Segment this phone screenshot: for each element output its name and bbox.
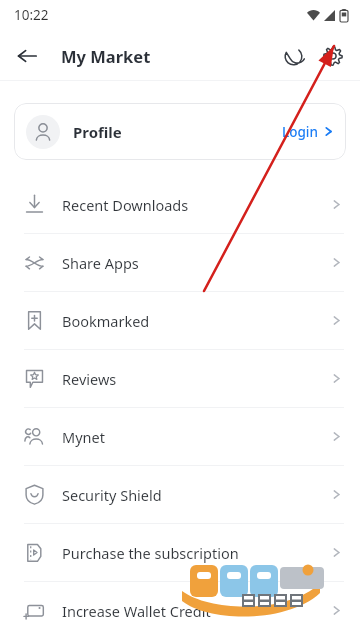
staticText: Bookmarked [62,311,150,331]
staticText: Security Shield [62,485,162,505]
button[interactable]: Bookmarked [0,292,360,349]
button[interactable]: Mynet [0,408,360,465]
staticText: Reviews [62,369,117,389]
staticText: Login [282,123,318,141]
button[interactable]: Reviews [0,350,360,407]
staticText: Recent Downloads [62,195,189,215]
staticText: Mynet [62,427,105,447]
button[interactable]: Profile [14,103,346,160]
button[interactable]: Settings [313,36,353,76]
button[interactable]: Share Apps [0,234,360,291]
staticText: Purchase the subscription [62,543,239,563]
button[interactable]: Night mode [273,36,313,76]
button[interactable]: Back [7,36,47,76]
staticText: 10:22 [14,6,49,24]
button[interactable]: Recent Downloads [0,176,360,233]
button[interactable]: Increase Wallet Credit [0,582,360,639]
button[interactable]: Security Shield [0,466,360,523]
button[interactable]: Purchase the subscription [0,524,360,581]
staticText: Share Apps [62,253,139,273]
staticText: My Market [61,45,151,67]
staticText: Profile [73,122,122,142]
staticText: Increase Wallet Credit [62,601,211,621]
